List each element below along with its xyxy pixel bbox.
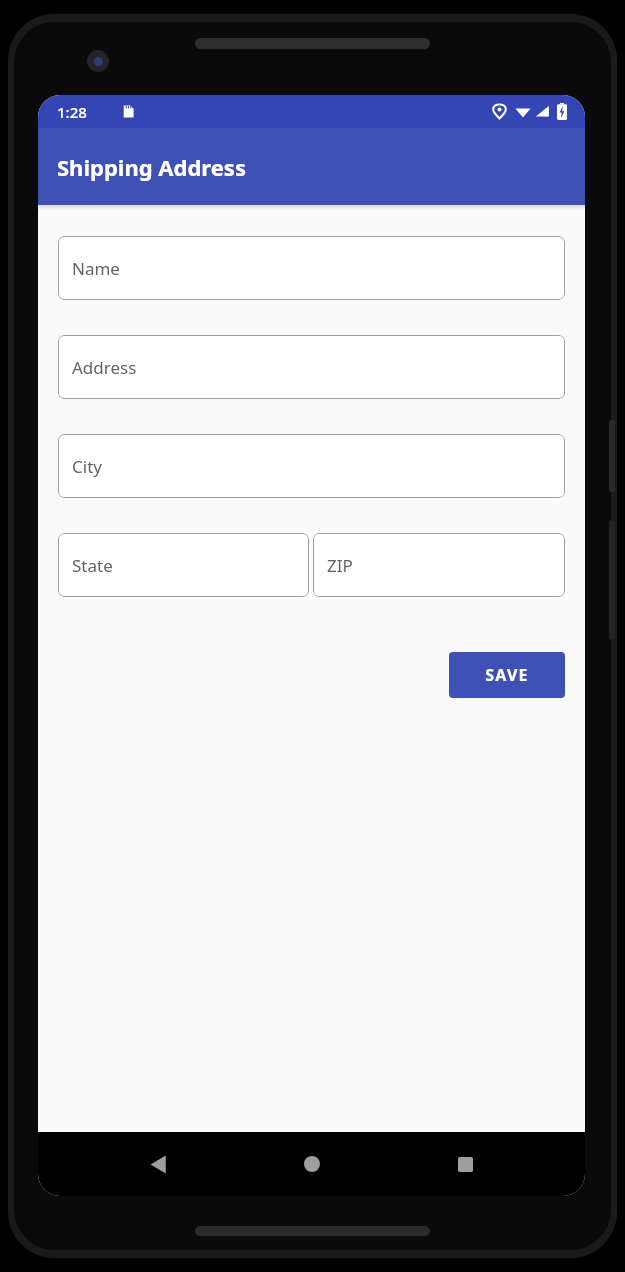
staticText: State (72, 554, 113, 577)
button[interactable]: Address (58, 335, 565, 399)
staticText: Name (72, 257, 120, 280)
staticText: 1:28 (57, 102, 87, 122)
button[interactable]: SAVE (449, 652, 565, 698)
button[interactable]: State (58, 533, 309, 597)
staticText: Shipping Address (57, 152, 246, 182)
button[interactable]: ZIP (313, 533, 565, 597)
button[interactable]: Recent apps (441, 1140, 489, 1188)
staticText: City (72, 455, 102, 478)
staticText: Address (72, 356, 137, 379)
button[interactable]: Name (58, 236, 565, 300)
staticText: ZIP (327, 554, 353, 577)
button[interactable]: Home (288, 1140, 336, 1188)
button[interactable]: City (58, 434, 565, 498)
button[interactable]: Back (134, 1140, 182, 1188)
staticText: SAVE (485, 664, 529, 686)
